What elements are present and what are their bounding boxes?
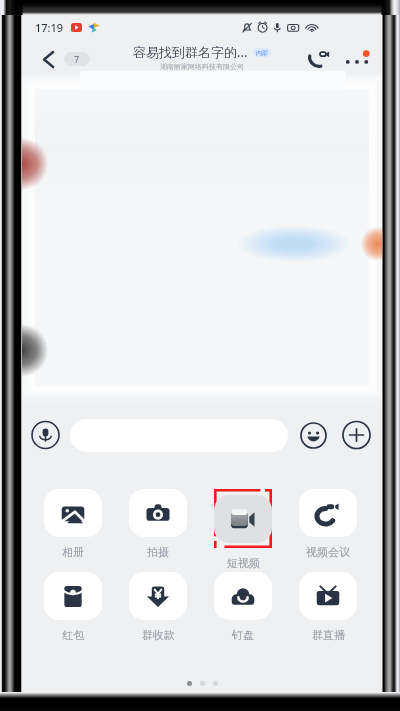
button[interactable]: Add attachment bbox=[342, 422, 371, 448]
button[interactable]: Video call bbox=[304, 44, 334, 74]
button[interactable]: 短视频 bbox=[214, 489, 272, 570]
button[interactable]: More options bbox=[342, 44, 372, 74]
button[interactable]: Back bbox=[35, 44, 61, 74]
staticText: 视频会议 bbox=[306, 545, 350, 559]
staticText: 内部 bbox=[256, 49, 268, 57]
button[interactable]: 视频会议 bbox=[299, 489, 357, 559]
button[interactable]: Voice message bbox=[31, 422, 60, 448]
button[interactable]: 拍摄 bbox=[129, 489, 187, 559]
button[interactable]: 7 bbox=[64, 52, 90, 66]
button[interactable]: 群直播 bbox=[299, 572, 357, 642]
staticText: 湖南丽家网络科技有限公司 bbox=[160, 62, 244, 71]
staticText: 群收款 bbox=[142, 628, 175, 642]
staticText: 群直播 bbox=[312, 628, 345, 642]
button[interactable]: 钉盘 bbox=[214, 572, 272, 642]
staticText: 短视频 bbox=[227, 556, 260, 570]
button[interactable]: Emoji bbox=[300, 423, 327, 448]
staticText: 相册 bbox=[62, 545, 84, 559]
staticText: 拍摄 bbox=[147, 545, 169, 559]
staticText: 7 bbox=[74, 53, 80, 65]
button[interactable]: 红包 bbox=[44, 572, 102, 642]
button[interactable]: 相册 bbox=[44, 489, 102, 559]
staticText: 17:19 bbox=[35, 20, 64, 35]
staticText: 容易找到群名字的... bbox=[133, 43, 248, 61]
staticText: 钉盘 bbox=[232, 628, 254, 642]
staticText: 红包 bbox=[62, 628, 84, 642]
button[interactable]: 群收款 bbox=[129, 572, 187, 642]
